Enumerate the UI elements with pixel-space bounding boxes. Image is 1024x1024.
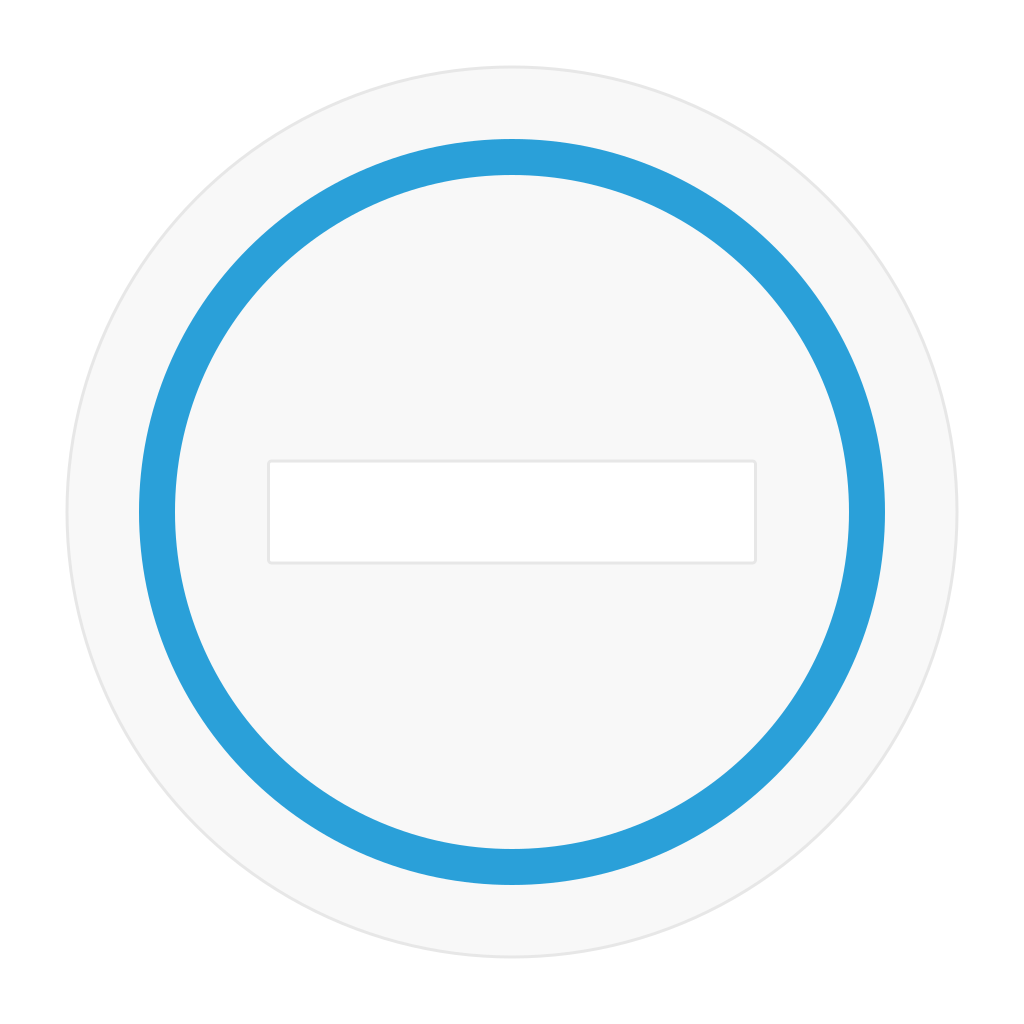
button[interactable]: Remove bbox=[65, 65, 958, 958]
